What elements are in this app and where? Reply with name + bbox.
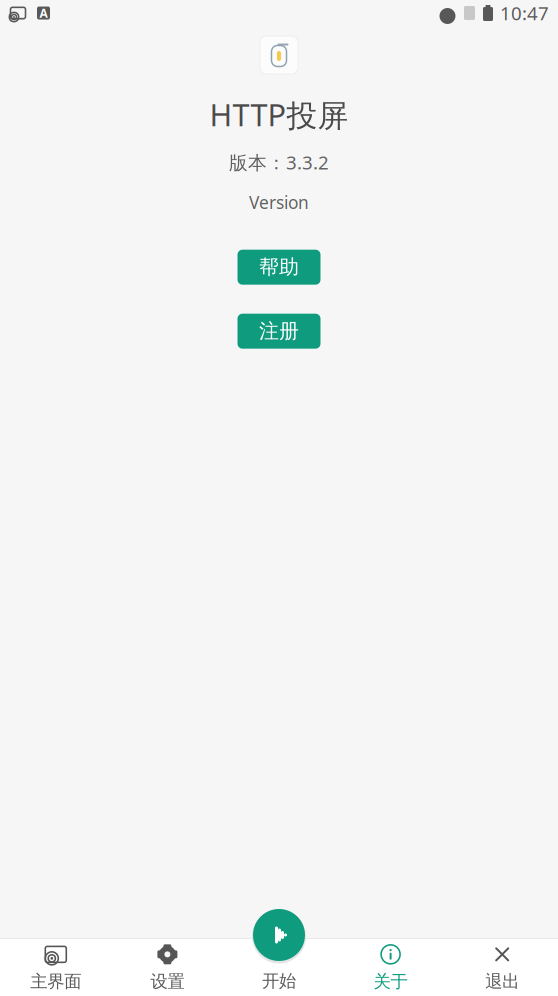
staticText: 设置	[150, 971, 184, 992]
button[interactable]: 设置	[112, 939, 223, 996]
button[interactable]: 退出	[446, 939, 558, 996]
button[interactable]: 主界面	[0, 939, 112, 996]
staticText: 开始	[262, 970, 296, 992]
staticText: 10:47	[500, 1, 549, 25]
staticText: A	[39, 5, 47, 21]
button[interactable]: 开始	[223, 939, 335, 996]
button[interactable]: 帮助	[237, 250, 320, 285]
staticText: 注册	[259, 319, 299, 343]
staticText: Version	[249, 191, 309, 214]
button[interactable]: 注册	[237, 314, 320, 349]
staticText: 关于	[374, 971, 408, 992]
staticText: HTTP投屏	[209, 94, 348, 135]
button[interactable]: 关于	[335, 939, 446, 996]
staticText: 主界面	[30, 971, 81, 992]
staticText: 帮助	[259, 255, 299, 279]
button[interactable]: 开始	[250, 906, 308, 964]
staticText: 版本：3.3.2	[229, 150, 329, 175]
staticText: 退出	[485, 971, 519, 992]
